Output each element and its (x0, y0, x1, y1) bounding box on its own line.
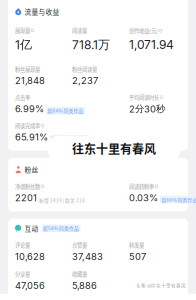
staticText: 点赞量 (72, 241, 87, 249)
staticText: 平均阅读时长 (129, 93, 159, 101)
staticText: 头条 @往东十里有春风 (136, 282, 186, 289)
staticText: 47,056 (15, 280, 45, 291)
staticText: 收藏量 (72, 270, 87, 278)
staticText: 718.1万 (72, 37, 110, 52)
staticText: 65.91% (15, 131, 48, 143)
staticText: 10,628 (15, 251, 45, 262)
staticText: 点击率 (15, 94, 30, 101)
staticText: 5,886 (72, 280, 97, 291)
staticText: 超28% 同类作品 (51, 136, 87, 142)
staticText: 1亿 (15, 37, 32, 52)
staticText: 转发量 (129, 241, 144, 249)
staticText: 37,483 (72, 251, 103, 262)
staticText: 1,071.94 (129, 37, 174, 52)
staticText: 新增 2419 | 取关 218 (39, 197, 85, 203)
staticText: 阅读转粉率 (129, 182, 154, 190)
staticText: 阅读完成率 (15, 122, 40, 129)
staticText: 往东十里有春风 (72, 140, 156, 157)
staticText: 0.03% (129, 192, 158, 203)
staticText: 粉丝 (24, 165, 38, 174)
staticText: 净增粉丝数 (15, 182, 40, 190)
staticText: 流量与收益 (24, 7, 59, 16)
staticText: 21,848 (15, 75, 45, 86)
staticText: 6.99% (15, 103, 44, 115)
staticText: 创作收益(元) (129, 27, 158, 34)
staticText: 粉丝展现量 (15, 65, 40, 73)
staticText: 2201 (15, 192, 37, 203)
staticText: 展现量 (15, 26, 30, 34)
staticText: 互动 (24, 223, 38, 233)
staticText: 分享量 (15, 270, 30, 278)
staticText: 超54% 同类作品 (43, 225, 79, 232)
staticText: 评论量 (15, 241, 30, 249)
staticText: 阅读量 (72, 26, 87, 34)
staticText: 超64% 同类作品 (47, 107, 83, 114)
staticText: 粉丝阅读量 (72, 65, 97, 73)
staticText: 超66% 同类作品 (161, 196, 196, 203)
staticText: 2,237 (72, 75, 98, 86)
staticText: 2分30秒 (129, 103, 165, 115)
staticText: 507 (129, 251, 146, 262)
